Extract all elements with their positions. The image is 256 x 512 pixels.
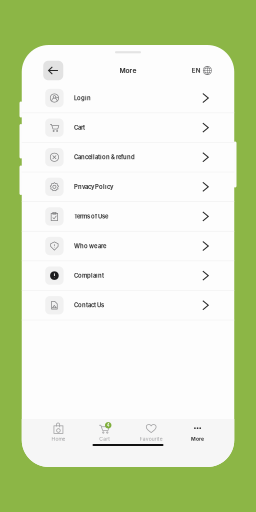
button[interactable]: Cancellation & refund: [22, 143, 234, 172]
staticText: 4: [107, 423, 110, 428]
button[interactable]: Back: [43, 61, 63, 80]
staticText: Terms of Use: [74, 213, 108, 220]
staticText: Privacy Policy: [74, 183, 113, 190]
button[interactable]: Privacy Policy: [22, 172, 234, 202]
button[interactable]: Who we are: [22, 231, 234, 261]
button[interactable]: Login: [22, 83, 234, 113]
button[interactable]: Contact Us: [22, 291, 234, 320]
button[interactable]: More: [174, 423, 221, 442]
button[interactable]: Cart: [22, 113, 234, 143]
staticText: More: [191, 436, 204, 442]
button[interactable]: Terms of Use: [22, 202, 234, 231]
staticText: Favourite: [140, 436, 163, 442]
staticText: Cart: [74, 124, 85, 131]
staticText: Cart: [99, 436, 110, 442]
staticText: Cancellation & refund: [74, 154, 135, 161]
button[interactable]: Complaint: [22, 261, 234, 291]
staticText: EN: [192, 67, 201, 74]
button[interactable]: Favourite: [128, 423, 174, 442]
staticText: More: [119, 66, 136, 75]
staticText: Complaint: [74, 272, 104, 279]
staticText: Home: [51, 436, 65, 442]
button[interactable]: Language English: [192, 66, 212, 75]
button[interactable]: Home: [35, 423, 82, 442]
staticText: Contact Us: [74, 302, 104, 309]
staticText: Login: [74, 94, 91, 102]
button[interactable]: 4: [82, 423, 128, 442]
staticText: Who we are: [74, 242, 106, 250]
